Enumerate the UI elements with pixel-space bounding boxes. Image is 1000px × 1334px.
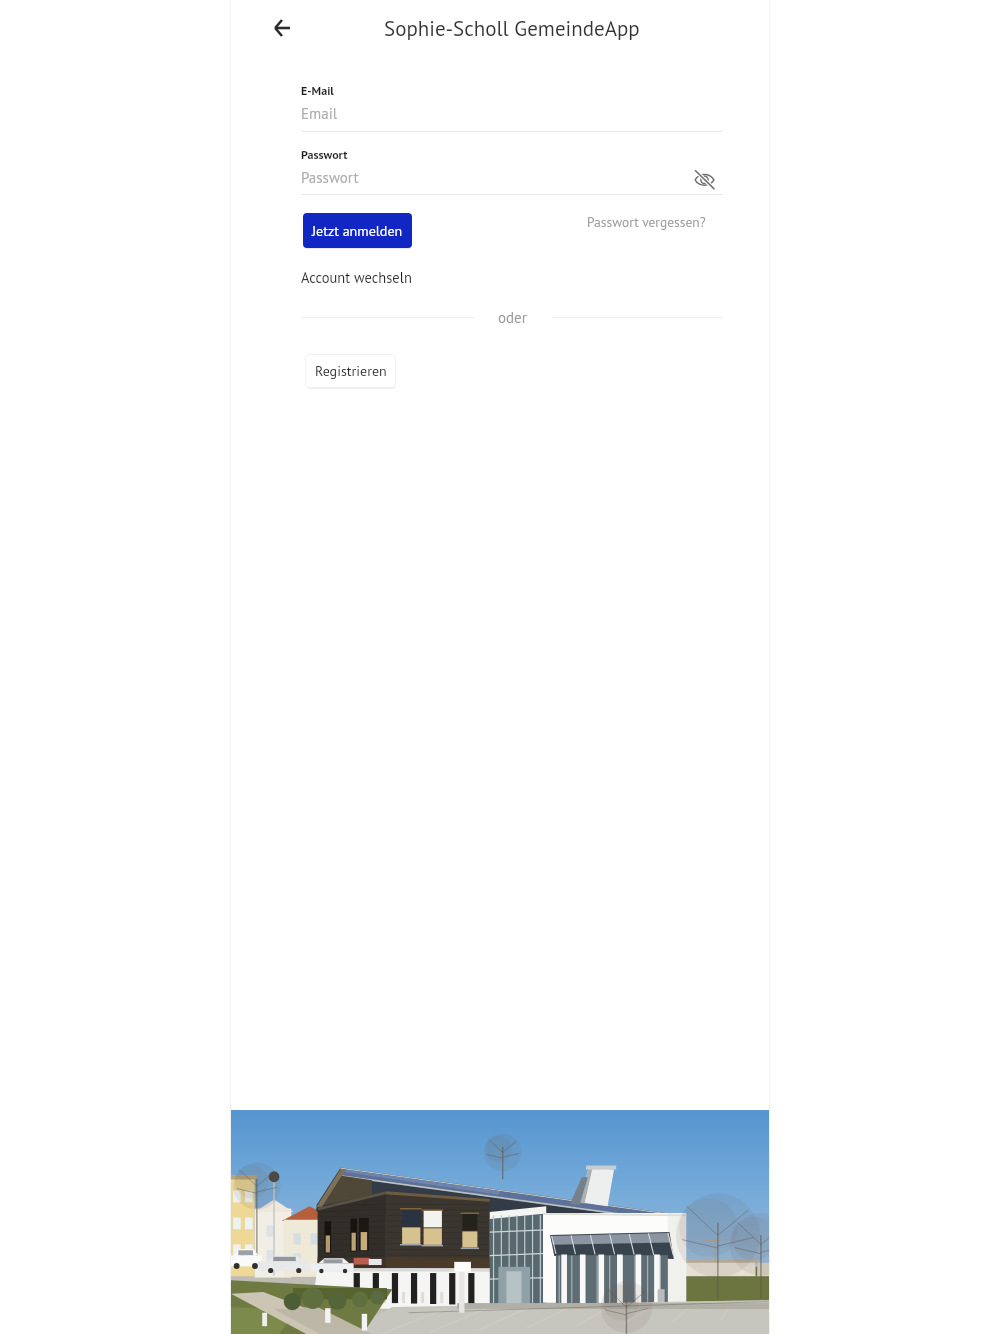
staticText: Passwort vergessen? [587,213,706,230]
button[interactable]: Jetzt anmelden [303,213,412,248]
staticText: Email [301,104,338,123]
staticText: Passwort [301,147,348,163]
staticText: Passwort [301,168,359,187]
button[interactable]: Back [263,9,300,46]
button[interactable]: Registrieren [305,354,396,388]
staticText: E-Mail [301,83,334,99]
staticText: Registrieren [315,362,387,380]
button[interactable]: Passwort vergessen? [587,211,706,232]
staticText: Account wechseln [301,268,412,287]
button[interactable]: Account wechseln [301,268,412,287]
staticText: Sophie-Scholl GemeindeApp [384,15,640,42]
button[interactable]: Show password [691,166,718,193]
staticText: oder [498,308,527,327]
staticText: Jetzt anmelden [312,222,403,240]
